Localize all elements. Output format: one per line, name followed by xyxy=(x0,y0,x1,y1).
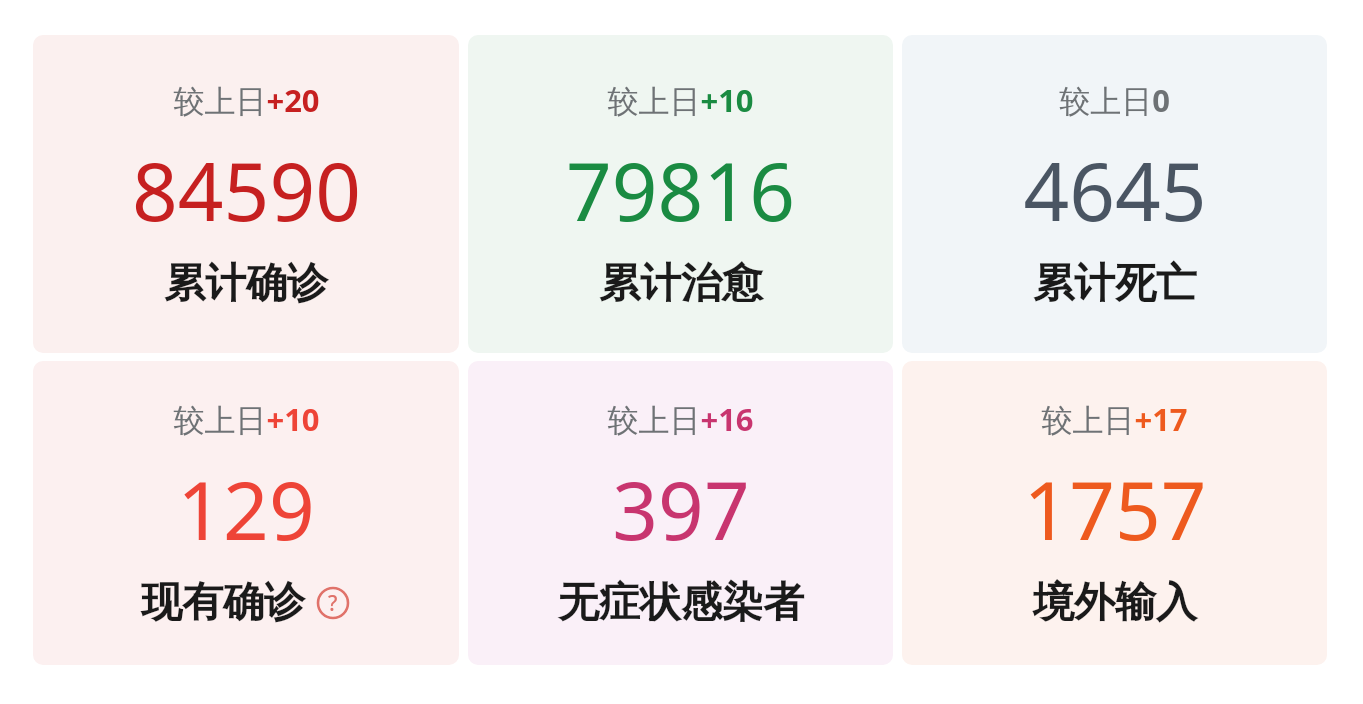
staticText: 较上日0 xyxy=(1059,79,1170,121)
staticText: 397 xyxy=(612,454,750,563)
staticText: 1757 xyxy=(1023,454,1207,563)
staticText: 较上日+20 xyxy=(173,79,320,121)
staticText: 129 xyxy=(177,454,315,563)
button[interactable]: 较上日+17 xyxy=(902,361,1327,665)
staticText: ? xyxy=(328,589,338,618)
staticText: 境外输入 xyxy=(1033,577,1197,629)
staticText: 79816 xyxy=(566,135,795,244)
staticText: 较上日+10 xyxy=(607,79,754,121)
staticText: 较上日+10 xyxy=(173,398,320,440)
button[interactable]: 较上日+20 xyxy=(33,35,459,353)
button[interactable]: 较上日0 xyxy=(902,35,1327,353)
staticText: 无症状感染者 xyxy=(558,577,804,629)
staticText: 累计治愈 xyxy=(599,258,763,310)
button[interactable]: 说明 xyxy=(315,585,351,621)
staticText: 累计确诊 xyxy=(164,258,328,310)
staticText: 较上日+17 xyxy=(1041,398,1188,440)
staticText: 现有确诊 xyxy=(141,577,305,629)
button[interactable]: 较上日+10 xyxy=(468,35,893,353)
button[interactable]: 较上日+10 xyxy=(33,361,459,665)
staticText: 84590 xyxy=(132,135,361,244)
staticText: 较上日+16 xyxy=(607,398,754,440)
staticText: 4645 xyxy=(1023,135,1207,244)
button[interactable]: 较上日+16 xyxy=(468,361,893,665)
staticText: 累计死亡 xyxy=(1033,258,1197,310)
